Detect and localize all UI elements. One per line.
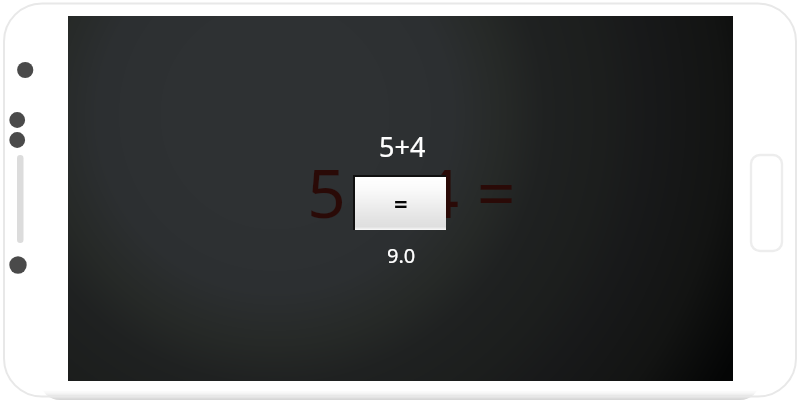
staticText: 5+4 — [379, 128, 426, 165]
staticText: = — [394, 187, 408, 220]
button[interactable]: = — [353, 175, 446, 230]
staticText: 5 + 4 = — [307, 145, 516, 238]
staticText: 9.0 — [387, 242, 416, 269]
